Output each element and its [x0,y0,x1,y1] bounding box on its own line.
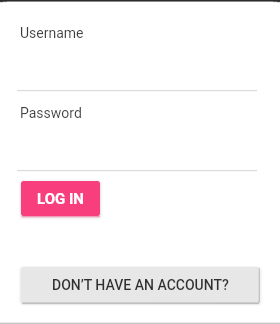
button[interactable]: Password [17,94,258,156]
staticText: Username [20,25,84,41]
button[interactable]: LOG IN [21,181,100,216]
button[interactable]: DON’T HAVE AN ACCOUNT? [21,267,259,302]
staticText: LOG IN [37,190,84,208]
staticText: Password [20,105,82,121]
staticText: DON’T HAVE AN ACCOUNT? [52,277,229,293]
button[interactable]: Username [17,14,258,76]
